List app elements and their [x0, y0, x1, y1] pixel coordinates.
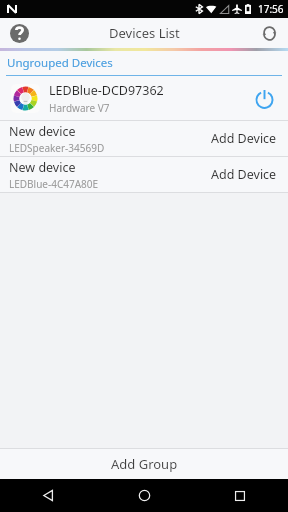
staticText: New device: [9, 159, 76, 176]
staticText: Add Group: [111, 455, 178, 473]
staticText: LEDBlue-4C47A80E: [9, 177, 99, 191]
button[interactable]: Help: [7, 21, 31, 45]
button[interactable]: Refresh: [257, 21, 281, 45]
button[interactable]: Power: [242, 76, 286, 120]
button[interactable]: New device: [0, 121, 288, 156]
staticText: New device: [9, 123, 76, 140]
staticText: Devices List: [109, 24, 180, 42]
staticText: Hardware V7: [49, 101, 110, 115]
staticText: Add Device: [211, 166, 277, 183]
staticText: 17:56: [258, 2, 284, 16]
button[interactable]: Add Device: [211, 130, 277, 147]
button[interactable]: New device: [0, 157, 288, 192]
button[interactable]: Recent apps: [192, 479, 288, 512]
button[interactable]: LEDBlue-DCD97362: [0, 76, 288, 120]
button[interactable]: Add Device: [211, 166, 277, 183]
button[interactable]: Home: [96, 479, 192, 512]
button[interactable]: Back: [0, 479, 96, 512]
button[interactable]: Add Group: [0, 449, 288, 479]
staticText: Add Device: [211, 130, 277, 147]
staticText: Ungrouped Devices: [7, 55, 113, 71]
staticText: LEDSpeaker-34569D: [9, 141, 105, 155]
staticText: LEDBlue-DCD97362: [49, 82, 164, 99]
